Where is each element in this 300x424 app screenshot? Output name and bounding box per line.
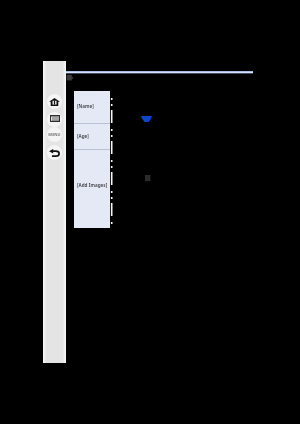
button[interactable]: [Age] bbox=[74, 124, 110, 149]
staticText: [Age] bbox=[77, 133, 89, 139]
button[interactable]: Back bbox=[47, 145, 62, 160]
button[interactable]: Home bbox=[47, 94, 62, 109]
button[interactable]: Badge bbox=[141, 116, 152, 122]
button[interactable]: Marker bbox=[145, 175, 151, 182]
button[interactable]: [Name] bbox=[74, 91, 110, 123]
staticText: [Add Images] bbox=[77, 182, 108, 188]
button[interactable]: Recent apps bbox=[47, 112, 62, 127]
button[interactable]: [Add Images] bbox=[74, 150, 110, 228]
staticText: MENU bbox=[48, 132, 61, 137]
staticText: [Name] bbox=[77, 103, 94, 109]
button[interactable]: App icon bbox=[66, 74, 73, 81]
button[interactable]: Menu bbox=[47, 127, 62, 142]
